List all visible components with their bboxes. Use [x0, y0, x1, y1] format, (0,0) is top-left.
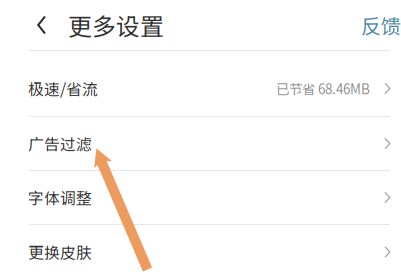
button[interactable]: 极速/省流 — [0, 51, 401, 116]
staticText: 字体调整 — [28, 186, 92, 209]
button[interactable]: 反馈 — [361, 0, 401, 50]
staticText: 广告过滤 — [28, 132, 92, 155]
staticText: 更换皮肤 — [28, 241, 92, 263]
staticText: 极速/省流 — [28, 77, 98, 100]
button[interactable]: 字体调整 — [0, 171, 401, 224]
staticText: 反馈 — [361, 10, 401, 39]
button[interactable]: 广告过滤 — [0, 117, 401, 170]
button[interactable]: 返回 — [0, 0, 68, 50]
staticText: 已节省 68.46MB — [276, 79, 370, 98]
staticText: 更多设置 — [68, 8, 164, 42]
button[interactable]: 更换皮肤 — [0, 225, 401, 279]
